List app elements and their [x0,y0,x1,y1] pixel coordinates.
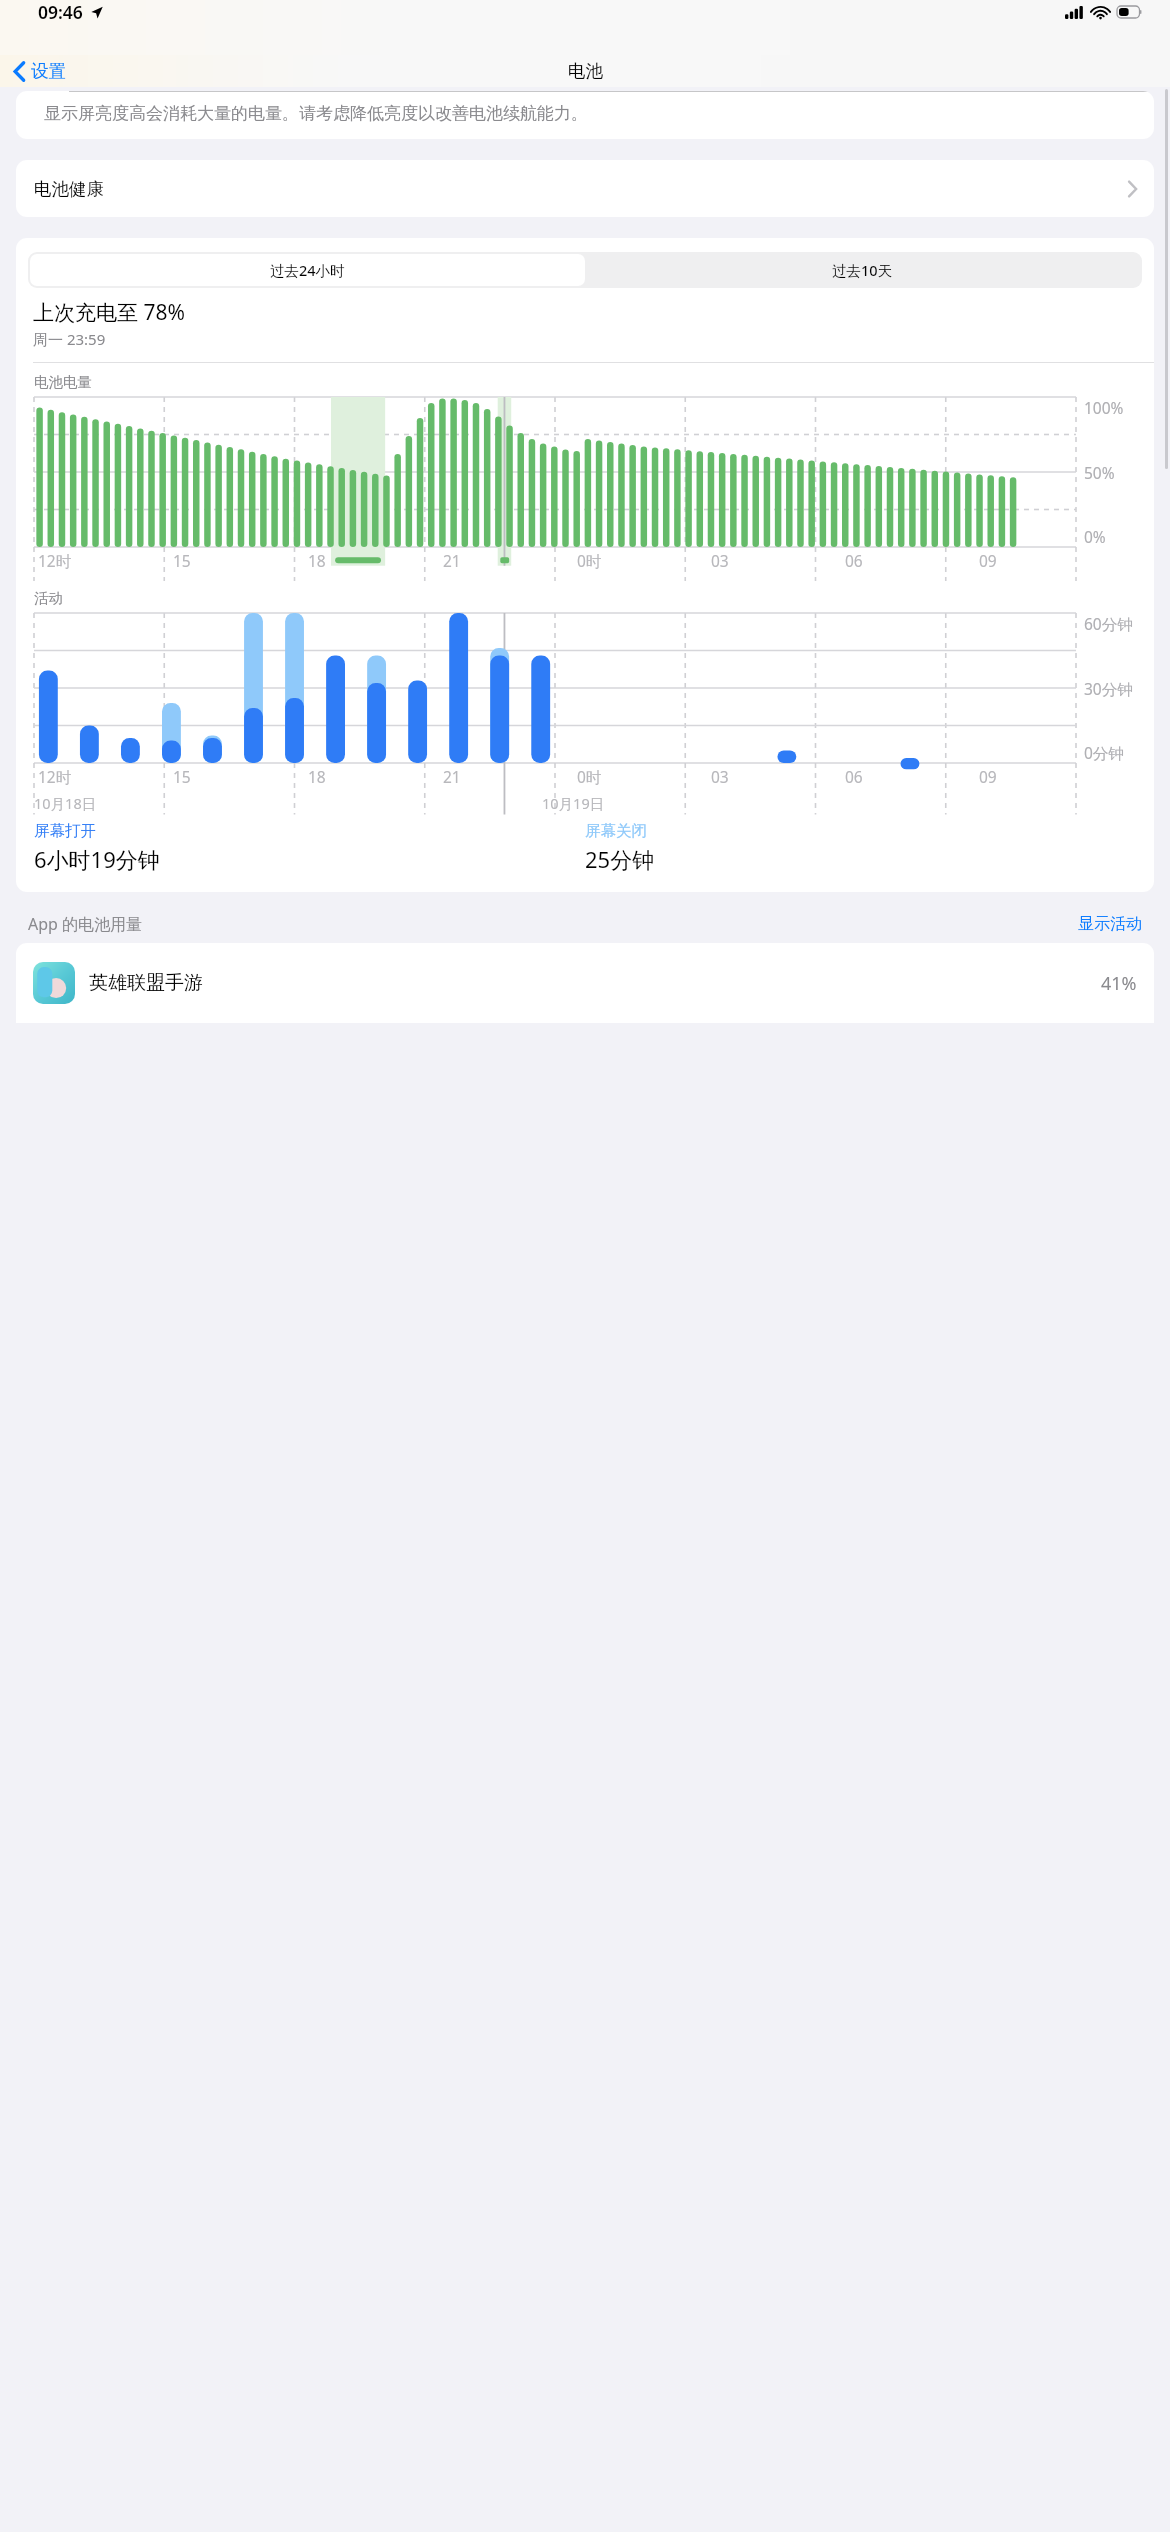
staticText: 0% [1084,526,1106,547]
staticText: 过去10天 [832,260,893,280]
staticText: 12时 [38,766,72,787]
staticText: 6小时19分钟 [34,844,160,874]
staticText: 电池 [568,60,603,82]
staticText: 0分钟 [1084,742,1124,763]
staticText: 周一 23:59 [33,329,106,349]
button[interactable]: 设置 [0,57,76,85]
staticText: 30分钟 [1084,678,1133,699]
staticText: 41% [1101,971,1137,996]
button[interactable]: 英雄联盟手游 [16,943,1154,1023]
staticText: 上次充电至 78% [33,298,185,327]
staticText: 21 [443,766,461,787]
button[interactable]: 过去10天 [585,254,1140,286]
staticText: 09 [979,550,997,571]
staticText: 03 [711,766,729,787]
staticText: 06 [845,550,863,571]
staticText: 显示屏亮度高会消耗大量的电量。请考虑降低亮度以改善电池续航能力。 [44,103,588,124]
staticText: App 的电池用量 [28,913,143,935]
staticText: 09:46 [38,0,83,24]
staticText: 03 [711,550,729,571]
staticText: 过去24小时 [270,260,345,280]
staticText: 15 [173,766,191,787]
staticText: 活动 [34,589,63,607]
staticText: 0时 [577,766,602,787]
staticText: 屏幕打开 [34,821,96,841]
staticText: 英雄联盟手游 [89,971,203,995]
staticText: 10月19日 [542,793,605,813]
staticText: 电池健康 [34,178,104,200]
staticText: 显示活动 [1078,914,1142,934]
staticText: 12时 [38,550,72,571]
staticText: 25分钟 [585,844,655,874]
staticText: 21 [443,550,461,571]
staticText: 60分钟 [1084,613,1133,634]
staticText: 06 [845,766,863,787]
button[interactable]: 电池健康 [16,160,1154,217]
staticText: 18 [308,766,326,787]
staticText: 09 [979,766,997,787]
button[interactable]: 显示活动 [1078,914,1142,934]
staticText: 50% [1084,462,1115,483]
staticText: 屏幕关闭 [585,821,647,841]
staticText: 18 [308,550,326,571]
button[interactable]: 过去24小时 [30,254,585,286]
staticText: 设置 [31,60,66,82]
staticText: 10月18日 [34,793,97,813]
staticText: 0时 [577,550,602,571]
staticText: 电池电量 [34,373,92,391]
staticText: 15 [173,550,191,571]
staticText: 100% [1084,397,1124,418]
